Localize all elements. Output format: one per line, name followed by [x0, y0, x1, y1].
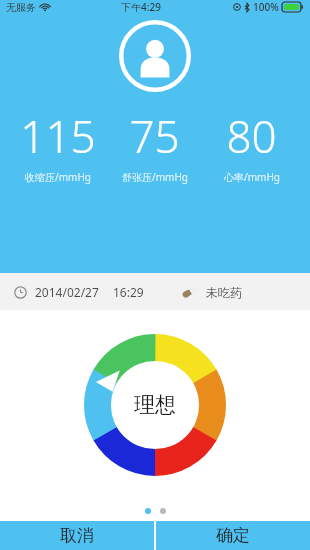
- staticText: 16:29: [113, 284, 144, 300]
- button[interactable]: Profile: [119, 20, 191, 92]
- staticText: 115: [20, 106, 96, 166]
- staticText: 心率/mmHg: [224, 170, 280, 184]
- staticText: 无服务: [6, 1, 36, 14]
- button[interactable]: 80: [203, 106, 300, 184]
- button[interactable]: 2014/02/27: [0, 273, 310, 310]
- staticText: 舒张压/mmHg: [122, 170, 188, 184]
- staticText: 确定: [216, 525, 250, 546]
- staticText: 75: [129, 106, 180, 166]
- staticText: 100%: [253, 0, 279, 14]
- staticText: 收缩压/mmHg: [25, 170, 91, 184]
- staticText: 下午4:29: [121, 0, 161, 14]
- staticText: 取消: [60, 525, 94, 546]
- staticText: 未吃药: [206, 285, 242, 300]
- staticText: 80: [226, 106, 277, 166]
- staticText: 2014/02/27: [35, 284, 99, 300]
- button[interactable]: 75: [106, 106, 203, 184]
- button[interactable]: 理想: [84, 334, 226, 476]
- button[interactable]: 取消: [0, 521, 154, 550]
- staticText: 理想: [134, 392, 176, 418]
- button[interactable]: 确定: [156, 521, 310, 550]
- button[interactable]: 115: [10, 106, 106, 184]
